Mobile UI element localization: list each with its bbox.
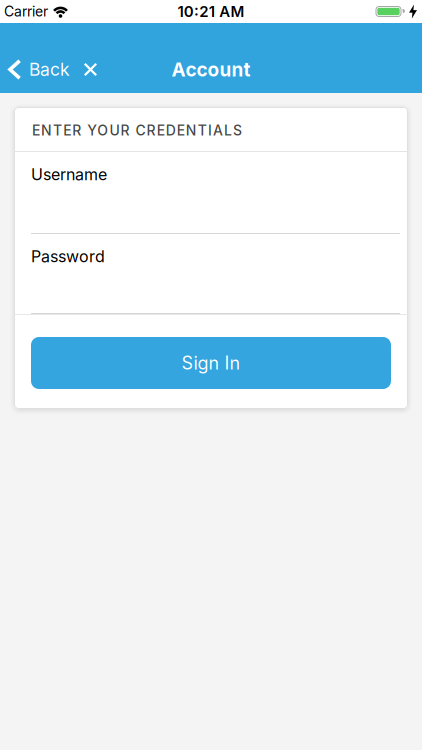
staticText: Account	[171, 56, 250, 83]
staticText: Carrier	[4, 1, 48, 22]
staticText: Back	[29, 57, 70, 82]
button[interactable]: Back	[0, 57, 70, 82]
button[interactable]: Close	[70, 63, 105, 76]
staticText: Password	[31, 245, 105, 268]
staticText: Username	[31, 163, 107, 186]
staticText: ENTER YOUR CREDENTIALS	[32, 120, 242, 141]
button[interactable]: Sign In	[31, 337, 391, 389]
staticText: Sign In	[181, 350, 240, 376]
staticText: 10:21 AM	[177, 1, 245, 22]
